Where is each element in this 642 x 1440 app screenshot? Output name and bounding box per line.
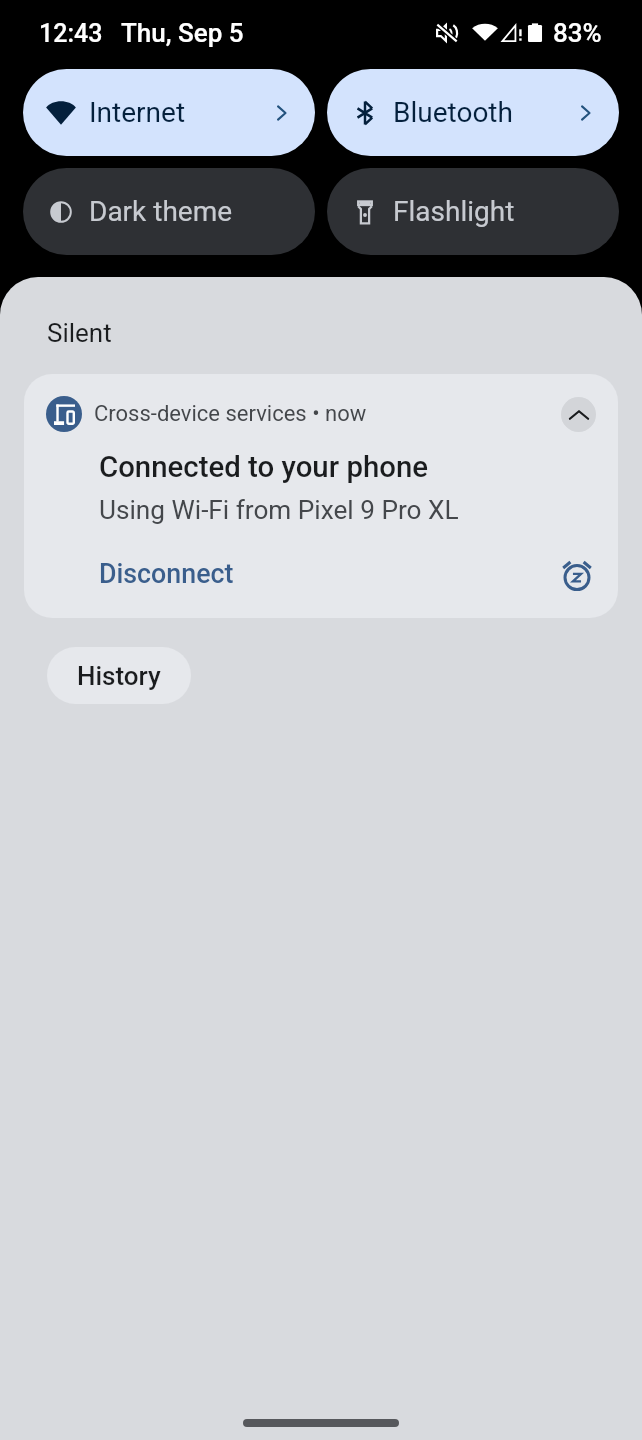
- button[interactable]: Cross-device services • now: [24, 374, 618, 618]
- button[interactable]: Flashlight: [327, 168, 619, 255]
- staticText: Silent: [47, 318, 112, 348]
- button[interactable]: Bluetooth: [327, 69, 619, 156]
- staticText: Flashlight: [393, 195, 597, 228]
- button[interactable]: Disconnect: [99, 552, 234, 595]
- button[interactable]: Dark theme: [23, 168, 315, 255]
- staticText: Disconnect: [99, 558, 234, 589]
- staticText: Bluetooth: [393, 96, 575, 129]
- staticText: Thu, Sep 5: [121, 18, 244, 48]
- staticText: Internet: [89, 96, 271, 129]
- staticText: Connected to your phone: [99, 450, 429, 484]
- button[interactable]: Snooze: [560, 557, 594, 591]
- staticText: 83%: [553, 18, 602, 48]
- staticText: Using Wi-Fi from Pixel 9 Pro XL: [99, 495, 459, 526]
- staticText: History: [77, 661, 161, 691]
- staticText: Cross-device services • now: [94, 401, 561, 427]
- button[interactable]: History: [47, 647, 191, 704]
- button[interactable]: Collapse: [561, 397, 596, 432]
- staticText: Dark theme: [89, 195, 293, 228]
- staticText: 12:43: [39, 19, 103, 48]
- button[interactable]: Internet: [23, 69, 315, 156]
